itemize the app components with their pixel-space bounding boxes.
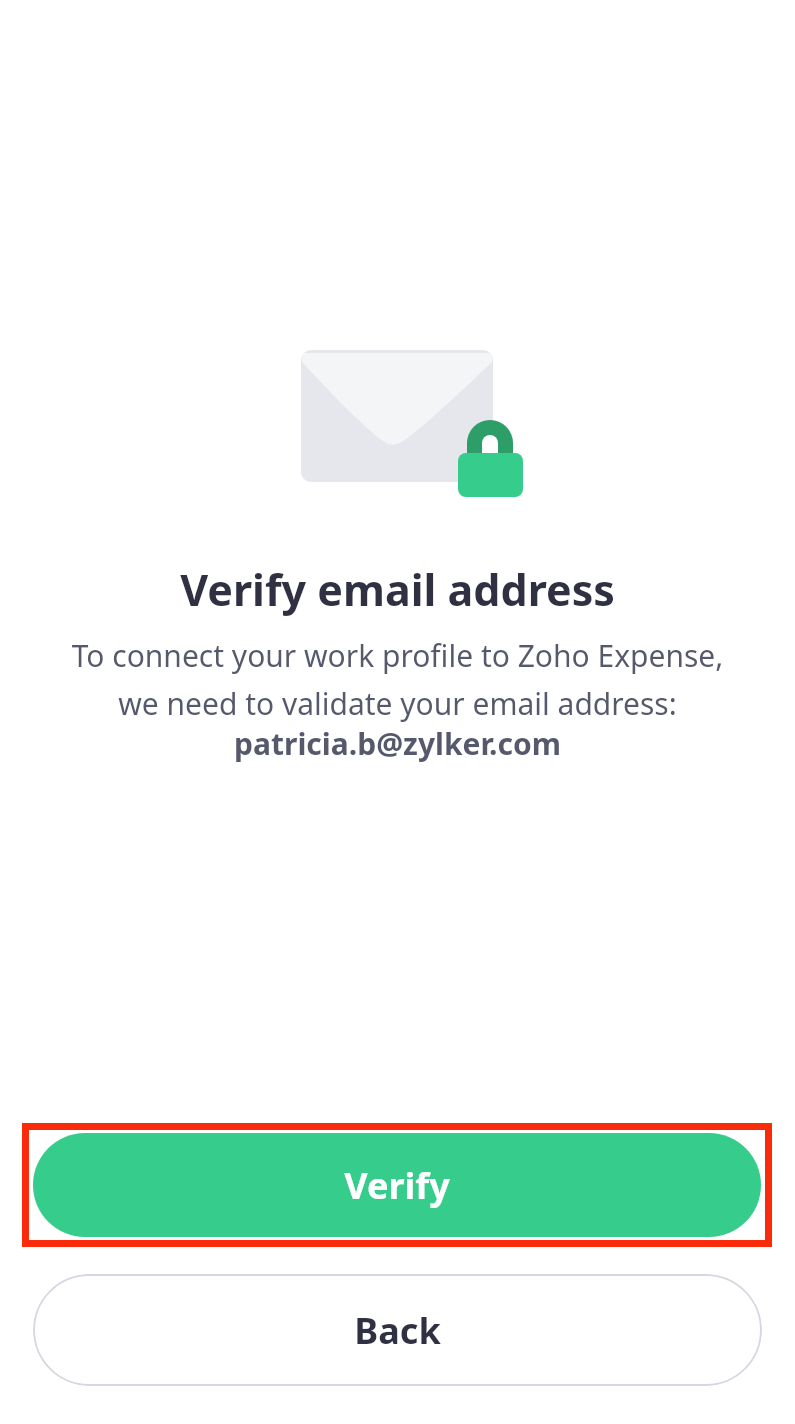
staticText: Back <box>354 1306 441 1355</box>
staticText: patricia.b@zylker.com <box>24 723 771 764</box>
staticText: To connect your work profile to Zoho Exp… <box>24 635 771 723</box>
button[interactable]: Back <box>33 1274 762 1386</box>
staticText: Verify <box>344 1161 450 1210</box>
button[interactable]: Verify <box>33 1133 761 1237</box>
staticText: Verify email address <box>24 560 771 619</box>
